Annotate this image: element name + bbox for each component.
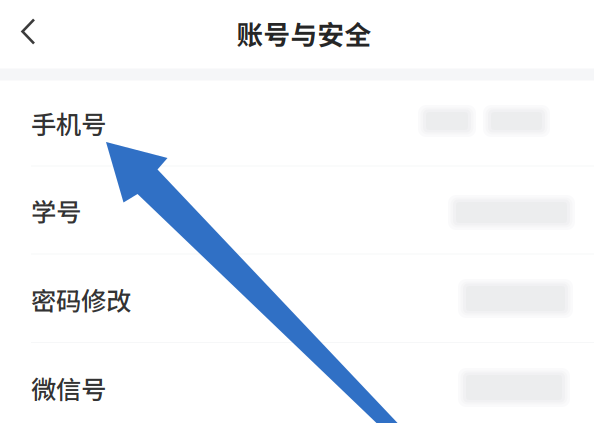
staticText: 微信号: [31, 370, 106, 406]
button[interactable]: 密码修改: [0, 255, 594, 343]
button[interactable]: 学号: [0, 166, 594, 254]
staticText: 学号: [31, 192, 81, 229]
button[interactable]: 微信号: [0, 344, 594, 423]
staticText: 手机号: [31, 105, 106, 141]
button[interactable]: Back: [0, 0, 56, 68]
button[interactable]: 手机号: [0, 79, 594, 167]
button[interactable]: 账号与安全: [224, 13, 384, 53]
staticText: 密码修改: [31, 281, 131, 318]
staticText: 账号与安全: [236, 14, 371, 52]
